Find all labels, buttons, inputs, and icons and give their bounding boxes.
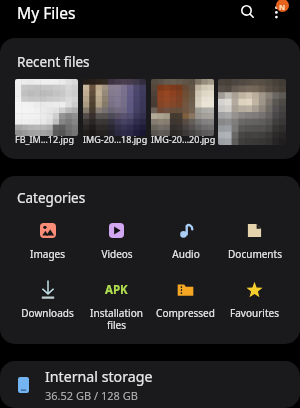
- button[interactable]: Internal storage: [0, 361, 300, 408]
- button[interactable]: Favourites: [220, 280, 289, 320]
- staticText: 36.52 GB / 128 GB: [45, 388, 138, 403]
- button[interactable]: FB_IM…12.jpg: [15, 79, 78, 148]
- button[interactable]: Audio: [151, 221, 220, 261]
- button[interactable]: IMG-20…18.jpg: [83, 79, 146, 148]
- button[interactable]: More options: [268, 0, 288, 20]
- staticText: Internal storage: [45, 367, 153, 386]
- button[interactable]: Recent file: [218, 79, 286, 145]
- staticText: Favourites: [230, 306, 279, 320]
- staticText: Installation files: [90, 306, 143, 332]
- button[interactable]: Compressed: [151, 280, 220, 320]
- staticText: IMG-20…20.jpg: [151, 133, 214, 145]
- staticText: Compressed: [156, 306, 215, 320]
- button[interactable]: Search: [236, 0, 260, 24]
- button[interactable]: Downloads: [13, 280, 82, 320]
- staticText: Images: [30, 247, 65, 261]
- staticText: IMG-20…18.jpg: [83, 133, 146, 145]
- staticText: Audio: [172, 247, 200, 261]
- staticText: Videos: [101, 247, 133, 261]
- staticText: FB_IM…12.jpg: [15, 133, 74, 145]
- staticText: N: [279, 2, 286, 12]
- button[interactable]: Documents: [220, 221, 289, 261]
- staticText: Documents: [228, 247, 282, 261]
- staticText: My Files: [17, 2, 76, 23]
- button[interactable]: Videos: [82, 221, 151, 261]
- staticText: Recent files: [17, 53, 90, 71]
- button[interactable]: APK: [82, 280, 151, 332]
- button[interactable]: IMG-20…20.jpg: [151, 79, 214, 148]
- button[interactable]: Images: [13, 221, 82, 261]
- staticText: APK: [105, 282, 128, 298]
- staticText: Downloads: [21, 306, 74, 320]
- staticText: Categories: [17, 189, 86, 207]
